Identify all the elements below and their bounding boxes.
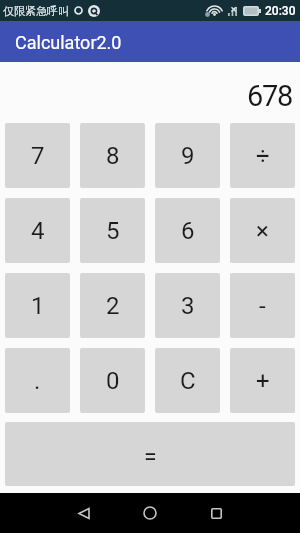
staticText: 4 — [31, 217, 45, 245]
button[interactable]: . — [5, 348, 70, 413]
staticText: 678 — [247, 79, 292, 113]
button[interactable]: + — [230, 348, 295, 413]
button[interactable] — [117, 493, 183, 533]
button[interactable]: - — [230, 273, 295, 338]
button[interactable]: 9 — [155, 123, 220, 188]
button[interactable]: C — [155, 348, 220, 413]
staticText: × — [256, 217, 269, 245]
staticText: 仅限紧急呼叫 — [3, 4, 69, 18]
staticText: 8 — [106, 142, 120, 170]
button[interactable] — [51, 493, 117, 533]
button[interactable]: = — [5, 422, 295, 486]
button[interactable]: 0 — [80, 348, 145, 413]
button[interactable]: ÷ — [230, 123, 295, 188]
staticText: 6 — [181, 217, 195, 245]
staticText: + — [256, 367, 270, 395]
button[interactable]: 8 — [80, 123, 145, 188]
button[interactable] — [183, 493, 249, 533]
button[interactable]: 6 — [155, 198, 220, 263]
staticText: 7 — [31, 142, 45, 170]
staticText: 0 — [106, 367, 120, 395]
staticText: . — [34, 367, 41, 395]
staticText: ÷ — [256, 142, 270, 170]
staticText: - — [259, 292, 266, 320]
staticText: 5 — [106, 217, 120, 245]
staticText: 3 — [181, 292, 195, 320]
button[interactable]: 7 — [5, 123, 70, 188]
staticText: 2 — [106, 292, 120, 320]
staticText: = — [144, 444, 157, 471]
staticText: C — [180, 367, 196, 395]
staticText: 9 — [181, 142, 195, 170]
button[interactable]: 3 — [155, 273, 220, 338]
button[interactable]: 4 — [5, 198, 70, 263]
staticText: 1 — [31, 292, 45, 320]
button[interactable]: × — [230, 198, 295, 263]
button[interactable]: 2 — [80, 273, 145, 338]
staticText: 20:30 — [265, 4, 296, 18]
button[interactable]: 1 — [5, 273, 70, 338]
button[interactable]: 5 — [80, 198, 145, 263]
staticText: Calculator2.0 — [15, 32, 122, 53]
